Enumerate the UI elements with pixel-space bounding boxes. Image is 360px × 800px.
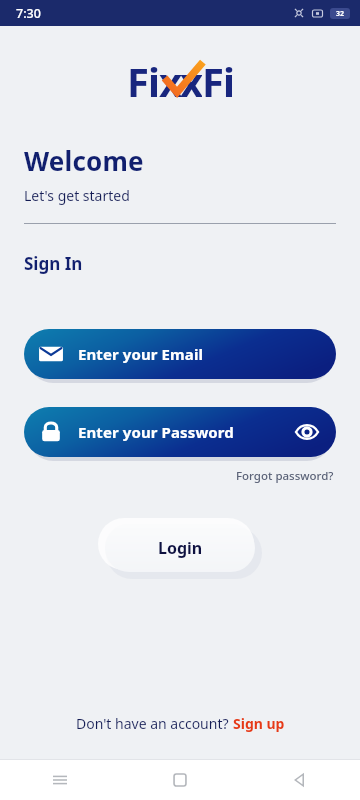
button[interactable]: Show password <box>292 417 322 447</box>
staticText: Forgot password? <box>236 468 334 484</box>
staticText: 7:30 <box>16 5 41 22</box>
staticText: Login <box>158 537 203 559</box>
button[interactable]: Sign up <box>233 714 285 733</box>
button[interactable]: Login <box>105 524 255 572</box>
staticText: Sign In <box>24 252 83 275</box>
staticText: Don't have an account? <box>76 714 233 733</box>
button[interactable]: Recents <box>0 760 120 800</box>
staticText: 32 <box>336 9 345 19</box>
staticText: Sign up <box>233 714 285 733</box>
staticText: Fi <box>202 54 234 102</box>
staticText: Fi <box>127 54 159 102</box>
button[interactable]: Email <box>24 329 336 379</box>
staticText: Enter your Email <box>78 344 204 364</box>
button[interactable]: Password <box>24 407 336 457</box>
staticText: xx <box>159 54 202 102</box>
button[interactable]: Home <box>120 760 240 800</box>
button[interactable]: Forgot password? <box>234 466 336 486</box>
staticText: Enter your Password <box>78 422 234 442</box>
staticText: Let's get started <box>24 186 130 205</box>
other: Password <box>38 419 64 445</box>
button[interactable]: Back <box>240 760 360 800</box>
staticText: Welcome <box>24 143 144 178</box>
other: Email <box>38 341 64 367</box>
